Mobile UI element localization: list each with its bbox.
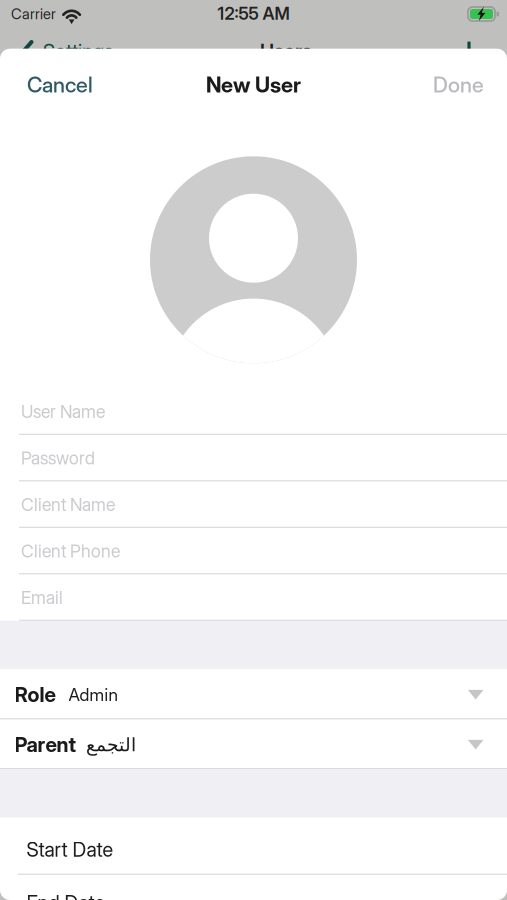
button[interactable]: Start Date [0,817,507,875]
button[interactable]: Client Phone [0,528,507,574]
button[interactable]: Role [0,669,507,719]
staticText: Users [260,39,312,64]
staticText: Client Phone [21,540,120,562]
staticText: 12:55 AM [217,3,289,24]
staticText: Settings [43,39,113,64]
staticText: Admin [68,684,117,705]
button[interactable]: Password [0,435,507,481]
staticText: New User [206,72,301,98]
staticText: Role [14,682,55,707]
staticText: Parent [14,732,76,757]
staticText: Start Date [26,838,113,862]
button[interactable]: Email [0,574,507,621]
button[interactable]: Cancel [17,61,103,109]
staticText: التجمع [85,734,135,755]
staticText: Email [21,587,63,608]
staticText: Done [433,72,484,98]
staticText: User Name [21,401,105,422]
button[interactable]: User Name [0,388,507,435]
staticText: Client Name [21,494,115,515]
button[interactable]: Client Name [0,481,507,528]
button[interactable]: End Date [0,875,507,900]
staticText: Password [21,447,95,469]
staticText: Cancel [27,72,93,98]
staticText: End Date [26,891,105,900]
staticText: Carrier [11,5,56,23]
button[interactable]: Done [423,61,494,109]
button[interactable]: Parent [0,719,507,769]
button[interactable]: Add photo [150,156,357,363]
